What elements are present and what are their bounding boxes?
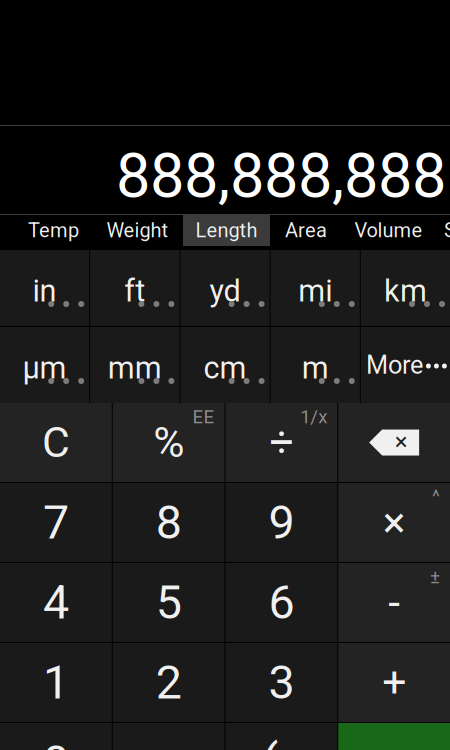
staticText: Temp (28, 219, 79, 242)
staticText: Area (285, 219, 327, 242)
staticText: ÷ (269, 417, 293, 467)
staticText: ± (430, 566, 440, 588)
button[interactable]: 4 (0, 563, 112, 642)
staticText: km (384, 273, 427, 309)
staticText: m (302, 350, 329, 386)
button[interactable]: Weight (92, 215, 183, 246)
button[interactable]: + (338, 643, 450, 722)
button[interactable]: - (338, 563, 450, 642)
staticText: 2 (156, 655, 182, 710)
staticText: 1 (43, 655, 69, 710)
button[interactable]: mi (271, 250, 360, 326)
button[interactable]: 7 (0, 483, 112, 562)
staticText: 1/x (300, 406, 327, 428)
button[interactable]: S (435, 215, 450, 246)
staticText: Volume (354, 219, 422, 242)
staticText: ft (124, 273, 145, 309)
button[interactable]: 8 (113, 483, 225, 562)
staticText: in (33, 273, 57, 309)
button[interactable]: 0 (0, 723, 112, 750)
staticText: - (388, 577, 400, 627)
button[interactable]: Area (270, 215, 342, 246)
staticText: 0 (43, 735, 69, 750)
staticText: 7 (43, 495, 69, 550)
staticText: + (382, 657, 406, 707)
button[interactable]: Open parenthesis (225, 723, 337, 750)
button[interactable]: in (0, 250, 89, 326)
button[interactable]: 3 (225, 643, 337, 722)
button[interactable]: μm (0, 327, 89, 403)
staticText: More (366, 350, 423, 380)
staticText: × (383, 497, 406, 547)
staticText: S (444, 219, 450, 242)
button[interactable]: Delete (338, 403, 450, 482)
button[interactable]: mm (90, 327, 179, 403)
staticText: 4 (43, 575, 69, 630)
button[interactable]: km (361, 250, 450, 326)
button[interactable]: Temp (15, 215, 92, 246)
staticText: 5 (156, 575, 182, 630)
button[interactable]: Length (183, 215, 270, 246)
staticText: 888,888,888 (116, 140, 446, 212)
staticText: μm (23, 350, 67, 386)
staticText: 3 (268, 655, 294, 710)
button[interactable]: m (271, 327, 360, 403)
button[interactable]: C (0, 403, 112, 482)
staticText: ( (261, 733, 278, 750)
button[interactable]: × (338, 483, 450, 562)
staticText: % (153, 417, 184, 467)
staticText: cm (203, 350, 246, 386)
button[interactable]: ÷ (225, 403, 337, 482)
button[interactable]: 2 (113, 643, 225, 722)
button[interactable]: More (361, 327, 450, 403)
button[interactable]: yd (180, 250, 270, 326)
staticText: C (42, 417, 70, 467)
staticText: × (395, 427, 408, 455)
staticText: mi (298, 273, 332, 309)
button[interactable]: 1 (0, 643, 112, 722)
staticText: mm (108, 350, 162, 386)
button[interactable]: Volume (342, 215, 435, 246)
staticText: 6 (268, 575, 294, 630)
button[interactable]: ft (90, 250, 179, 326)
button[interactable]: 9 (225, 483, 337, 562)
staticText: 9 (268, 495, 294, 550)
staticText: EE (192, 406, 214, 428)
staticText: Length (195, 219, 257, 242)
button[interactable]: 5 (113, 563, 225, 642)
button[interactable]: 6 (225, 563, 337, 642)
staticText: Weight (106, 219, 168, 242)
button[interactable]: cm (180, 327, 270, 403)
staticText: ^ (432, 486, 440, 508)
button[interactable]: % (113, 403, 225, 482)
staticText: 8 (156, 495, 182, 550)
staticText: yd (209, 273, 240, 309)
